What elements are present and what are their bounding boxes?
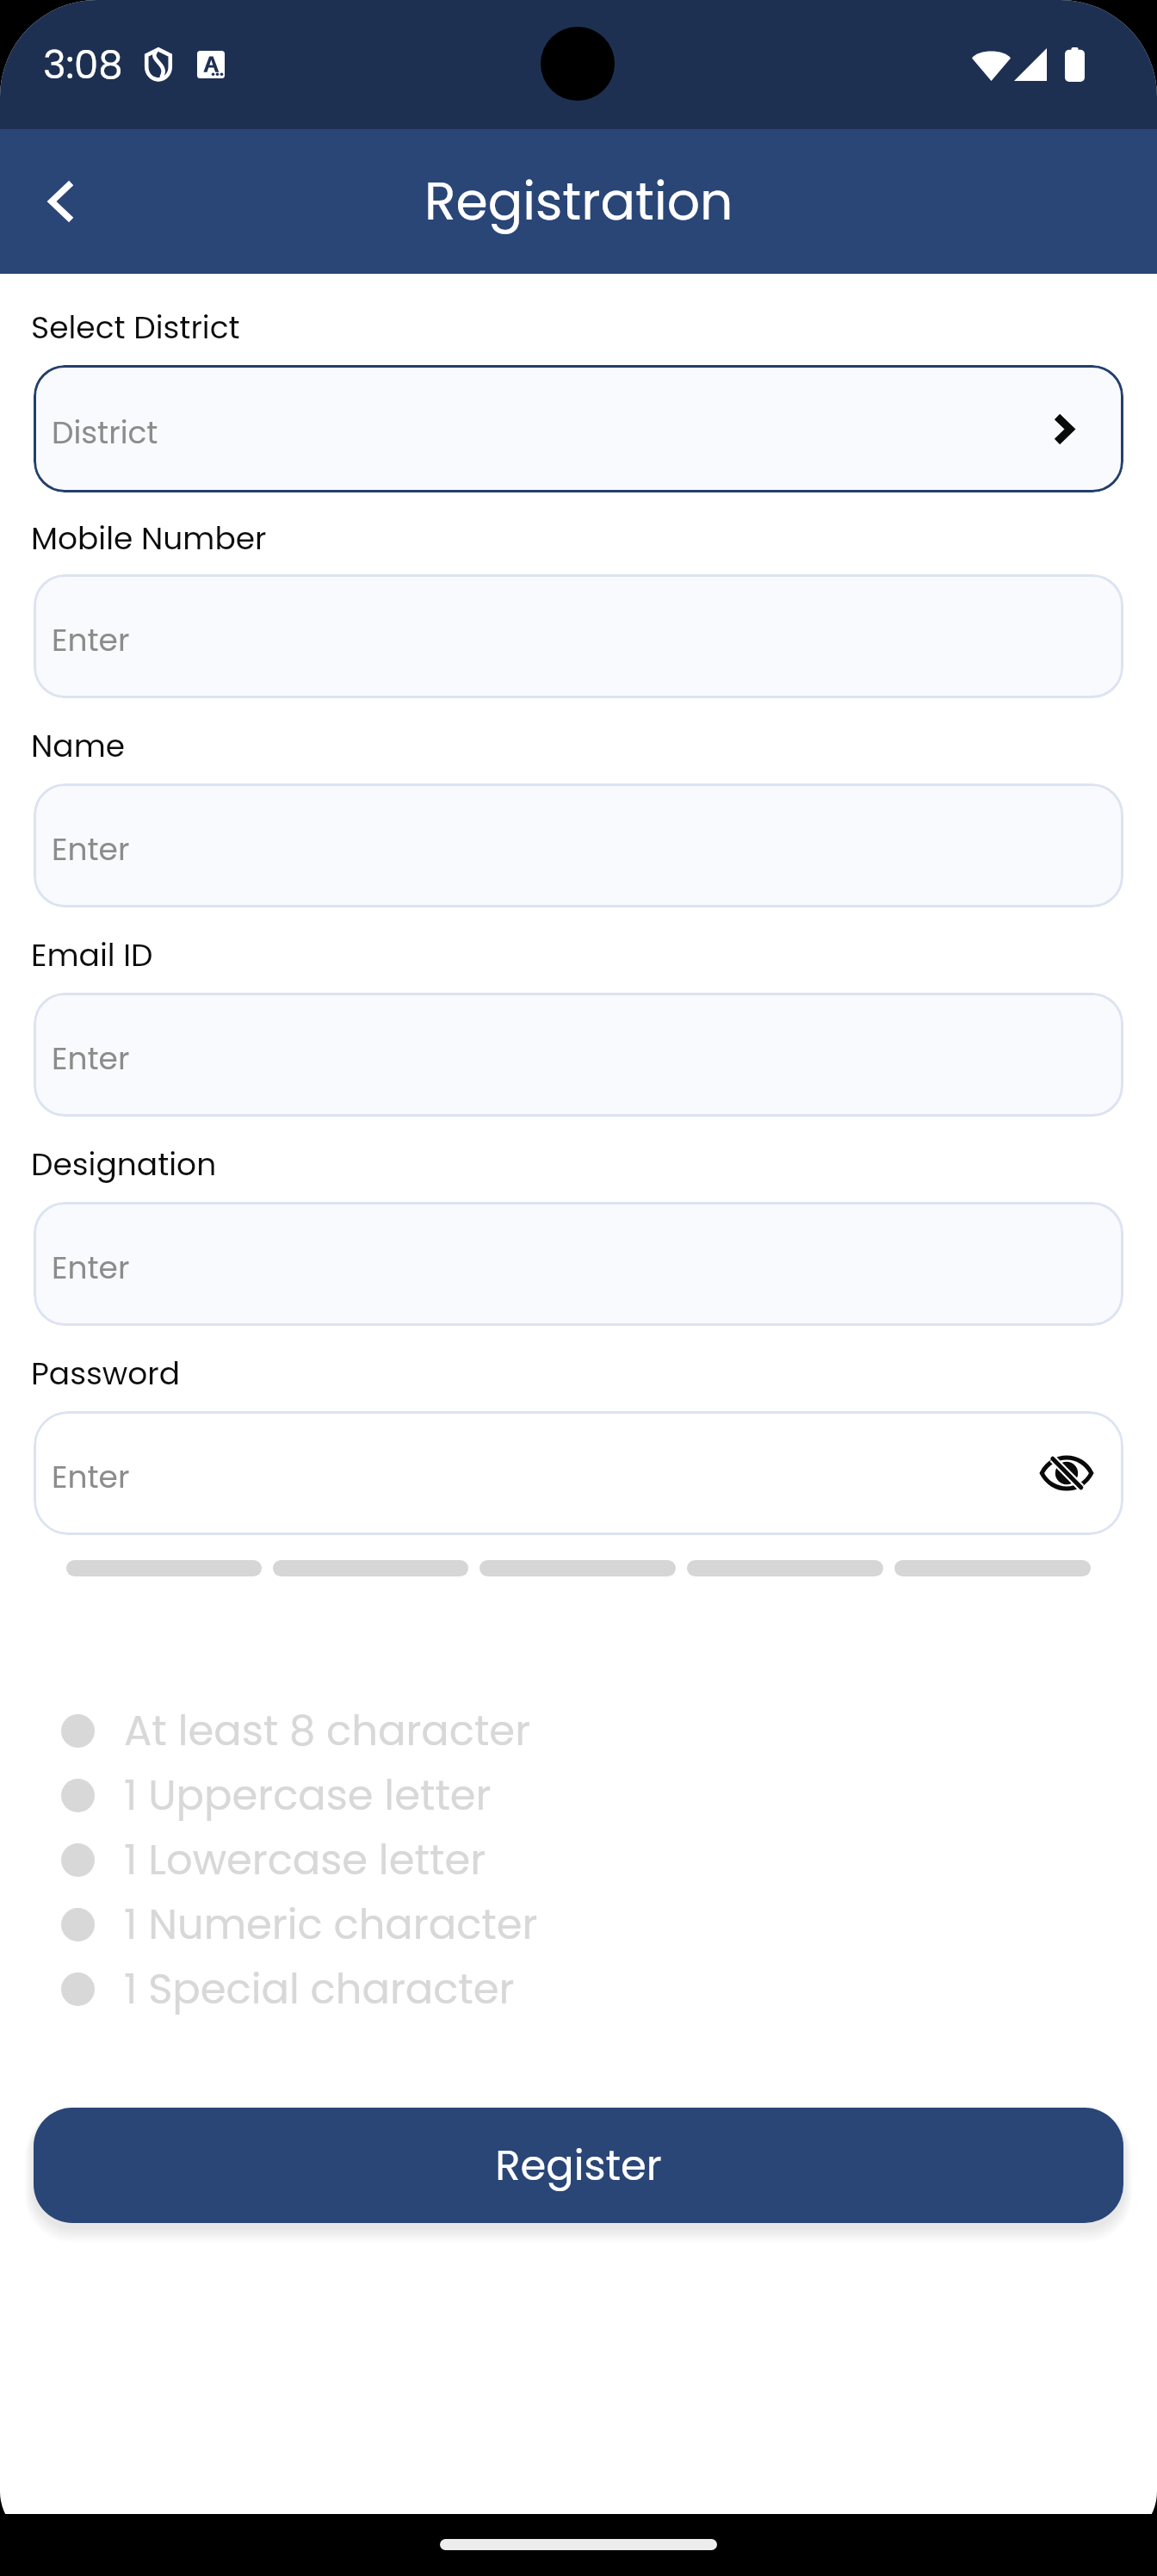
staticText: Designation	[31, 1142, 217, 1186]
staticText: Register	[495, 2137, 662, 2195]
staticText: 1 Uppercase letter	[124, 1767, 492, 1824]
button[interactable]: Register	[34, 2108, 1123, 2223]
staticText: Registration	[424, 165, 733, 238]
staticText: Enter	[52, 1455, 130, 1498]
button[interactable]: District	[34, 365, 1123, 492]
staticText: Enter	[52, 827, 130, 870]
staticText: Password	[31, 1352, 181, 1395]
staticText: Enter	[52, 1246, 130, 1289]
button[interactable]: Show password	[1036, 1442, 1098, 1504]
staticText: At least 8 character	[124, 1702, 531, 1760]
staticText: 1 Numeric character	[124, 1896, 538, 1954]
button[interactable]: Enter	[34, 993, 1123, 1117]
button[interactable]: Back	[19, 160, 102, 243]
staticText: 3:08	[43, 38, 123, 92]
staticText: Mobile Number	[31, 517, 267, 560]
button[interactable]: Enter	[34, 1411, 1123, 1535]
button[interactable]: Enter	[34, 574, 1123, 698]
staticText: Name	[31, 724, 126, 767]
button[interactable]: Enter	[34, 1202, 1123, 1326]
staticText: 1 Special character	[124, 1960, 515, 2018]
staticText: Email ID	[31, 933, 153, 976]
staticText: 1 Lowercase letter	[124, 1831, 486, 1889]
staticText: Select District	[31, 306, 240, 349]
staticText: Enter	[52, 618, 130, 661]
staticText: District	[52, 411, 158, 454]
staticText: Enter	[52, 1037, 130, 1080]
button[interactable]: Enter	[34, 783, 1123, 907]
button[interactable]: Select district	[1034, 399, 1092, 458]
